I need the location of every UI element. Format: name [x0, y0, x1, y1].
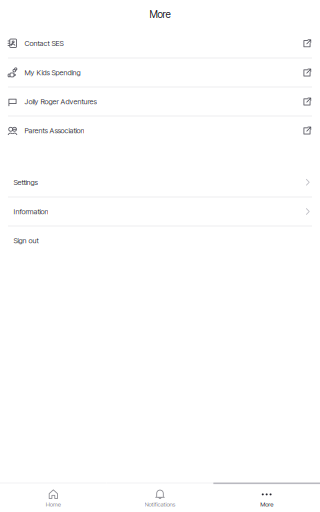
- staticText: Sign out: [13, 236, 38, 245]
- staticText: Settings: [13, 178, 37, 187]
- staticText: Parents Association: [24, 126, 84, 135]
- staticText: Information: [13, 207, 48, 216]
- button[interactable]: Contact SES: [0, 29, 320, 57]
- button[interactable]: Jolly Roger Adventures: [0, 87, 320, 115]
- button[interactable]: Parents Association: [0, 116, 320, 144]
- staticText: More: [260, 501, 273, 508]
- button[interactable]: Sign out: [0, 226, 320, 254]
- staticText: Jolly Roger Adventures: [24, 97, 96, 106]
- staticText: My Kids Spending: [24, 68, 80, 77]
- staticText: Contact SES: [24, 39, 63, 48]
- staticText: Notifications: [144, 501, 175, 508]
- button[interactable]: Notifications: [107, 481, 213, 512]
- staticText: More: [149, 8, 170, 20]
- button[interactable]: Home: [0, 481, 107, 512]
- button[interactable]: Information: [0, 197, 320, 225]
- button[interactable]: Settings: [0, 168, 320, 196]
- staticText: Home: [46, 501, 61, 508]
- button[interactable]: My Kids Spending: [0, 58, 320, 86]
- button[interactable]: More: [213, 481, 320, 512]
